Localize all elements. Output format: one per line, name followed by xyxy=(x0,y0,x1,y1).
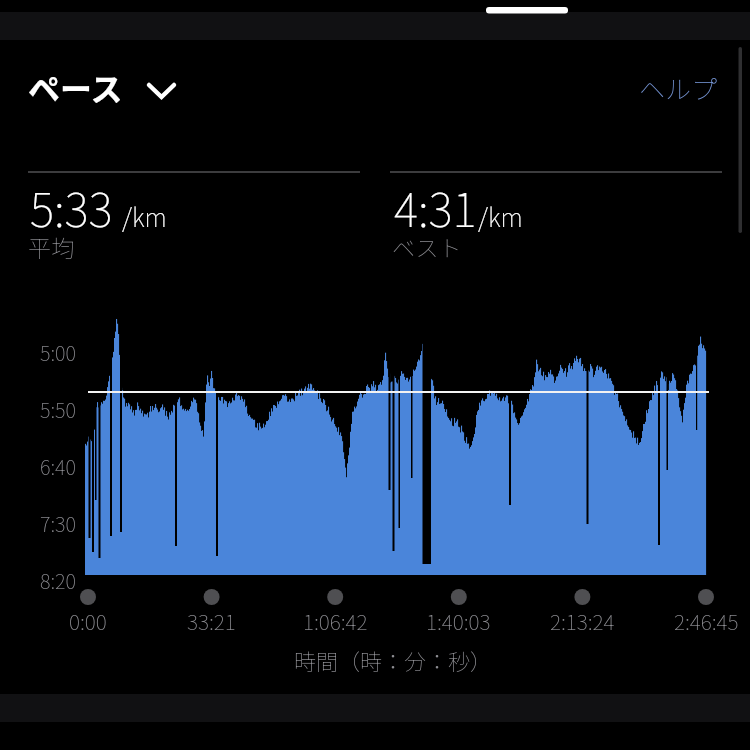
staticText: 5:33 xyxy=(30,174,113,234)
staticText: 平均 xyxy=(28,230,74,263)
staticText: 2:13:24 xyxy=(550,606,615,636)
staticText: 1:40:03 xyxy=(426,606,491,636)
staticText: 5:50 xyxy=(40,395,76,424)
staticText: 8:20 xyxy=(40,566,76,595)
staticText: ペース xyxy=(28,64,123,110)
staticText: /km xyxy=(478,198,523,234)
staticText: 0:00 xyxy=(69,606,107,636)
staticText: ヘルプ xyxy=(639,69,718,107)
button[interactable]: ペース xyxy=(28,58,154,116)
staticText: ベスト xyxy=(392,230,462,263)
staticText: 5:00 xyxy=(40,338,76,367)
staticText: 時間（時：分：秒） xyxy=(294,644,493,676)
staticText: 33:21 xyxy=(187,606,236,636)
button[interactable]: ヘルプ xyxy=(618,60,718,116)
staticText: /km xyxy=(122,198,167,234)
staticText: 1:06:42 xyxy=(303,606,368,636)
staticText: 2:46:45 xyxy=(674,606,739,636)
staticText: 4:31 xyxy=(394,174,477,234)
staticText: 6:40 xyxy=(40,452,76,481)
staticText: 7:30 xyxy=(40,509,76,538)
